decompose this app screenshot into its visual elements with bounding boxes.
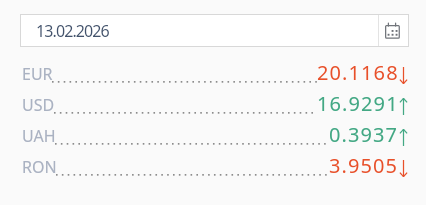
staticText: UAH — [22, 125, 56, 147]
staticText: 13.02.2026 — [36, 20, 109, 42]
button[interactable]: EUR — [0, 57, 426, 88]
button[interactable]: RON — [0, 150, 426, 181]
staticText: 16.9291 — [317, 90, 399, 117]
button[interactable]: 13.02.2026 — [20, 14, 378, 47]
staticText: RON — [22, 156, 57, 178]
button[interactable]: Open calendar picker — [379, 14, 409, 47]
staticText: 20.1168 — [317, 59, 399, 86]
button[interactable]: UAH — [0, 119, 426, 150]
staticText: USD — [22, 94, 55, 116]
staticText: 0.3937 — [329, 121, 399, 148]
staticText: EUR — [22, 63, 53, 85]
staticText: 3.9505 — [329, 152, 399, 179]
button[interactable]: USD — [0, 88, 426, 119]
